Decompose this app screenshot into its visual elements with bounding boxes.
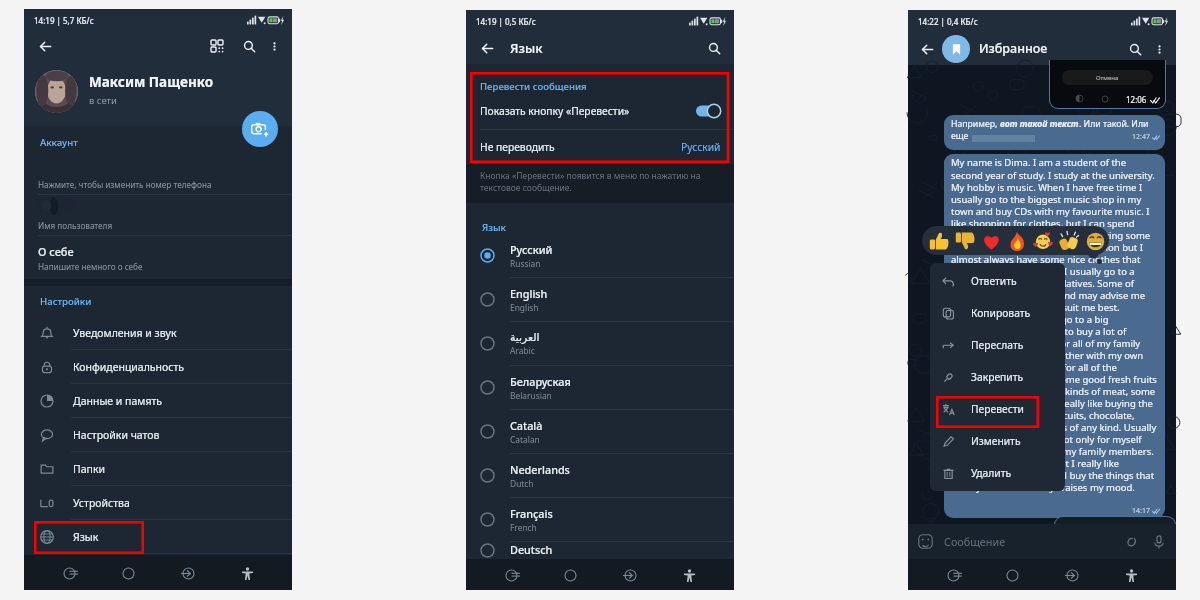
- button[interactable]: О себе: [24, 236, 292, 279]
- staticText: Русский: [681, 140, 721, 154]
- staticText: Язык: [482, 221, 506, 234]
- staticText: . Или такой. Или: [1079, 118, 1149, 130]
- button[interactable]: Удалить: [930, 457, 1065, 489]
- button[interactable]: Нажмите, чтобы изменить номер телефона: [24, 158, 292, 194]
- button[interactable]: Emoji: [917, 533, 934, 550]
- staticText: О себе: [38, 244, 74, 259]
- staticText: Català: [510, 418, 543, 433]
- button[interactable]: Change profile photo: [242, 111, 278, 147]
- button[interactable]: Back: [33, 34, 57, 58]
- staticText: Язык: [73, 530, 99, 544]
- button[interactable]: Home: [997, 560, 1027, 590]
- staticText: 14:17: [1132, 506, 1150, 516]
- staticText: Изменить: [971, 434, 1021, 448]
- button[interactable]: QR code: [205, 34, 229, 58]
- button[interactable]: Русский: [466, 234, 734, 277]
- button[interactable]: Back: [496, 560, 526, 590]
- button[interactable]: العربية: [466, 322, 734, 365]
- staticText: Переслать: [971, 338, 1024, 352]
- staticText: Устройства: [73, 496, 130, 510]
- button[interactable]: Устройства: [24, 486, 292, 519]
- button[interactable]: Grin: [1082, 228, 1108, 254]
- button[interactable]: Home: [113, 558, 143, 588]
- button[interactable]: Back: [54, 558, 84, 588]
- button[interactable]: Настройки чатов: [24, 418, 292, 451]
- staticText: Belarusian: [510, 390, 552, 401]
- button[interactable]: Язык: [24, 520, 292, 553]
- button[interactable]: Français: [466, 498, 734, 541]
- staticText: Русский: [510, 242, 553, 257]
- button[interactable]: English: [466, 278, 734, 321]
- button[interactable]: Recents: [615, 560, 645, 590]
- staticText: Deutsch: [510, 542, 553, 557]
- button[interactable]: Back: [938, 560, 968, 590]
- button[interactable]: Папки: [24, 452, 292, 485]
- staticText: Например,: [951, 118, 1000, 130]
- staticText: My name is Dima. I am a student of the s…: [951, 156, 1159, 493]
- staticText: Максим Пащенко: [89, 73, 214, 91]
- staticText: Показать кнопку «Перевести»: [480, 104, 630, 118]
- button[interactable]: Recents: [173, 558, 203, 588]
- button[interactable]: Back: [916, 38, 938, 60]
- button[interactable]: Search: [1124, 38, 1146, 60]
- button[interactable]: Love face: [1030, 228, 1056, 254]
- button[interactable]: Thumbs down: [952, 228, 978, 254]
- staticText: Аккаунт: [40, 136, 78, 149]
- button[interactable]: Переслать: [930, 329, 1065, 361]
- button[interactable]: Данные и память: [24, 384, 292, 417]
- button[interactable]: Не переводить: [466, 130, 734, 164]
- button[interactable]: Voice message: [1150, 533, 1167, 550]
- button[interactable]: Accessibility: [1116, 560, 1146, 590]
- button[interactable]: Search: [702, 36, 726, 60]
- button[interactable]: Имя пользователя: [24, 195, 292, 235]
- button[interactable]: Изменить: [930, 425, 1065, 457]
- button[interactable]: Heart: [978, 228, 1004, 254]
- staticText: Настройки: [40, 295, 92, 308]
- button[interactable]: Thumbs up: [926, 228, 952, 254]
- staticText: Напишите немного о себе: [38, 261, 143, 272]
- staticText: Нажмите, чтобы изменить номер телефона: [38, 179, 212, 190]
- button[interactable]: Home: [555, 560, 585, 590]
- button[interactable]: Accessibility: [232, 558, 262, 588]
- staticText: Arabic: [510, 345, 535, 356]
- staticText: Данные и память: [73, 394, 163, 408]
- staticText: вот такой текст: [1000, 118, 1079, 130]
- button[interactable]: Конфиденциальность: [24, 350, 292, 383]
- button[interactable]: Ответить: [930, 265, 1065, 297]
- staticText: Dutch: [510, 478, 534, 489]
- staticText: в сети: [89, 94, 117, 107]
- staticText: Перевести сообщения: [480, 80, 587, 93]
- button[interactable]: Беларуская: [466, 366, 734, 409]
- staticText: Имя пользователя: [38, 220, 113, 231]
- staticText: Уведомления и звук: [73, 326, 177, 340]
- button[interactable]: Accessibility: [674, 560, 704, 590]
- staticText: 14:22 | 0,4 КБ/с: [918, 16, 978, 27]
- button[interactable]: Копировать: [930, 297, 1065, 329]
- staticText: Отмена: [1096, 74, 1119, 82]
- button[interactable]: Nederlands: [466, 454, 734, 497]
- button[interactable]: Attach: [1122, 533, 1139, 550]
- button[interactable]: More options: [1149, 39, 1169, 59]
- button[interactable]: Search: [237, 34, 261, 58]
- button[interactable]: Català: [466, 410, 734, 453]
- button[interactable]: Уведомления и звук: [24, 316, 292, 349]
- staticText: Язык: [510, 39, 543, 57]
- button[interactable]: Fire: [1004, 228, 1030, 254]
- staticText: Français: [510, 506, 553, 521]
- button[interactable]: Back: [475, 36, 499, 60]
- button[interactable]: Deutsch: [466, 542, 734, 559]
- staticText: Беларуская: [510, 374, 571, 389]
- button[interactable]: Recents: [1057, 560, 1087, 590]
- staticText: Копировать: [971, 306, 1031, 320]
- staticText: French: [510, 522, 537, 533]
- button[interactable]: Закрепить: [930, 361, 1065, 393]
- staticText: English: [510, 302, 539, 313]
- button[interactable]: Clap: [1056, 228, 1082, 254]
- staticText: 14:19 | 5,7 КБ/с: [34, 15, 94, 26]
- button[interactable]: Показать кнопку «Перевести»: [466, 93, 734, 129]
- staticText: Перевести: [971, 402, 1024, 416]
- button[interactable]: More options: [263, 35, 285, 57]
- button[interactable]: Перевести: [930, 393, 1065, 425]
- staticText: Закрепить: [971, 370, 1024, 384]
